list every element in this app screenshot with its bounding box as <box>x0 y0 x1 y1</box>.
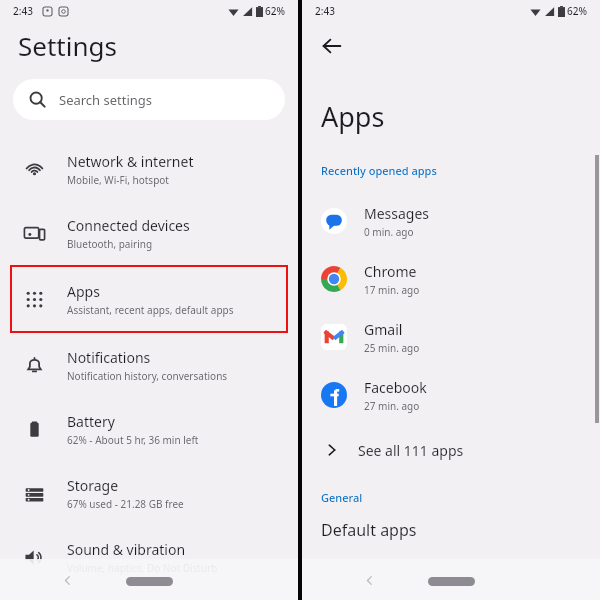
button[interactable]: Back <box>56 569 78 591</box>
button[interactable]: Battery <box>0 397 298 461</box>
staticText: 25 min. ago <box>364 341 420 355</box>
staticText: Bluetooth, pairing <box>67 237 153 251</box>
button[interactable]: Back <box>314 28 350 64</box>
staticText: Battery <box>67 412 115 431</box>
staticText: 17 min. ago <box>364 283 420 297</box>
staticText: Default apps <box>321 519 417 541</box>
button[interactable]: Search settings <box>13 79 285 120</box>
button[interactable]: Network & internet <box>0 137 298 201</box>
staticText: Mobile, Wi-Fi, hotspot <box>67 173 169 187</box>
staticText: 62% - About 5 hr, 36 min left <box>67 433 199 447</box>
button[interactable]: Home <box>428 577 475 586</box>
button[interactable]: Storage <box>0 461 298 525</box>
staticText: See all 111 apps <box>358 441 464 460</box>
staticText: Sound & vibration <box>67 540 186 559</box>
staticText: 62% <box>567 4 587 18</box>
button[interactable]: Facebook <box>302 366 600 424</box>
staticText: Storage <box>67 476 119 495</box>
staticText: 2:43 <box>13 4 33 18</box>
staticText: Search settings <box>59 91 153 109</box>
staticText: 2:43 <box>315 4 335 18</box>
button[interactable]: Gmail <box>302 308 600 366</box>
staticText: Gmail <box>364 320 403 339</box>
staticText: 67% used - 21.28 GB free <box>67 497 184 511</box>
staticText: Apps <box>67 282 100 301</box>
button[interactable]: Sound & vibration <box>0 525 298 589</box>
staticText: Messages <box>364 204 430 223</box>
button[interactable]: Connected devices <box>0 201 298 265</box>
staticText: Connected devices <box>67 216 190 235</box>
button[interactable]: See all 111 apps <box>302 424 600 476</box>
staticText: General <box>321 490 363 505</box>
button[interactable]: Home <box>126 577 173 586</box>
staticText: Notifications <box>67 348 151 367</box>
staticText: Facebook <box>364 378 427 397</box>
staticText: Assistant, recent apps, default apps <box>67 303 234 317</box>
button[interactable]: Back <box>358 569 380 591</box>
staticText: Settings <box>18 28 117 63</box>
staticText: 27 min. ago <box>364 399 420 413</box>
button[interactable]: Apps <box>10 265 288 333</box>
button[interactable]: Chrome <box>302 250 600 308</box>
staticText: Recently opened apps <box>321 163 437 178</box>
button[interactable]: Messages <box>302 192 600 250</box>
staticText: Notification history, conversations <box>67 369 228 383</box>
button[interactable]: Notifications <box>0 333 298 397</box>
staticText: Apps <box>321 98 385 135</box>
staticText: Volume, haptics, Do Not Disturb <box>67 561 218 575</box>
staticText: Network & internet <box>67 152 194 171</box>
staticText: 62% <box>265 4 285 18</box>
staticText: Chrome <box>364 262 417 281</box>
staticText: 0 min. ago <box>364 225 414 239</box>
